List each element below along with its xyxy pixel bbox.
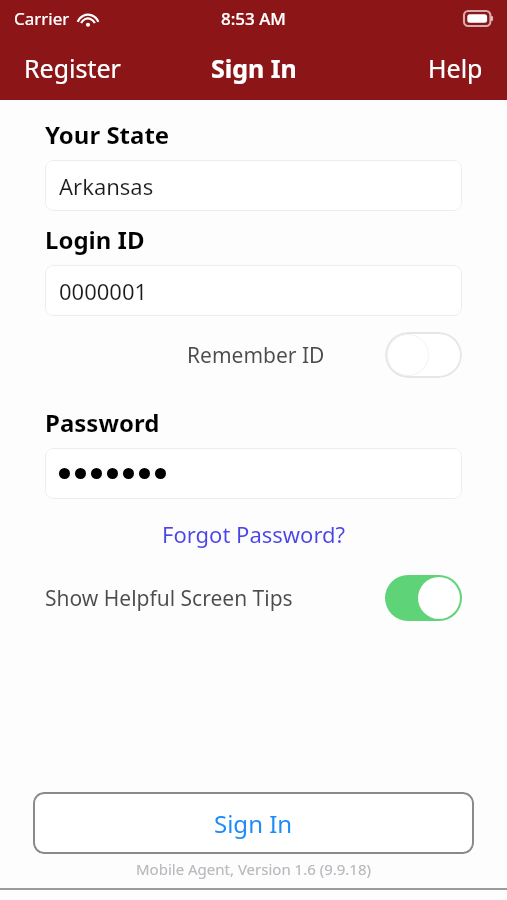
button[interactable] [45,448,462,499]
staticText: Login ID [45,223,145,256]
button[interactable]: Toggle off [385,332,462,378]
button[interactable]: Arkansas [45,160,462,211]
button[interactable]: Register [0,41,145,95]
button[interactable]: Sign In [33,792,474,854]
staticText: Remember ID [187,341,325,370]
staticText: Register [24,51,121,85]
button[interactable]: Forgot Password? [150,515,358,553]
staticText: Carrier [14,7,70,30]
staticText: Help [428,51,483,85]
staticText: Your State [45,118,170,151]
staticText: Show Helpful Screen Tips [45,584,293,613]
button[interactable]: Toggle on [385,575,462,621]
button[interactable]: Help [404,41,507,95]
button[interactable]: Show Helpful Screen Tips [45,571,462,625]
staticText: Forgot Password? [162,519,346,549]
staticText: 8:53 AM [221,7,286,30]
staticText: Sign In [211,51,297,85]
staticText: Mobile Agent, Version 1.6 (9.9.18) [0,859,507,879]
staticText: Sign In [214,807,293,840]
button[interactable]: 0000001 [45,265,462,316]
staticText: Password [45,406,160,439]
button[interactable]: Remember ID [45,328,462,382]
staticText: 0000001 [59,276,148,306]
staticText: Arkansas [59,171,154,201]
